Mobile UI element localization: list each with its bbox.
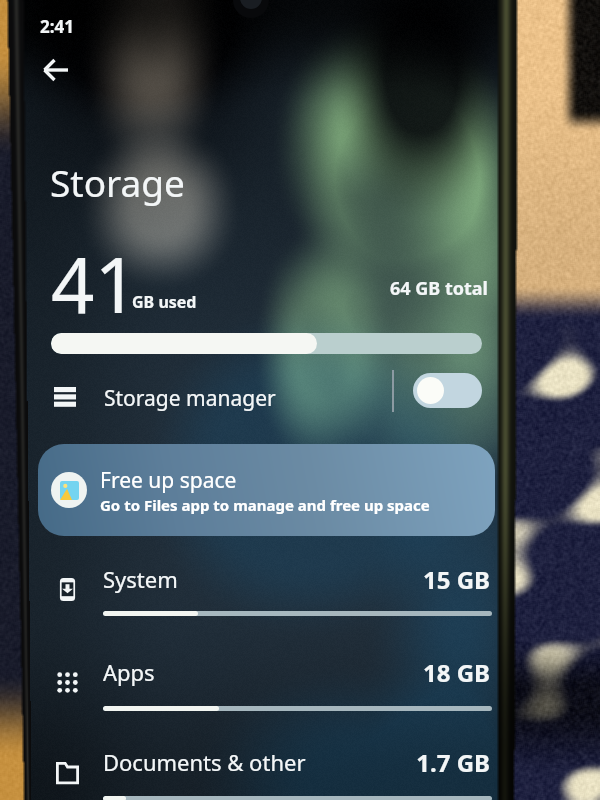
staticText: Storage manager xyxy=(104,384,276,413)
staticText: Documents & other xyxy=(103,747,306,777)
button[interactable]: Documents & other xyxy=(0,745,600,800)
staticText: System xyxy=(103,564,178,594)
staticText: 15 GB xyxy=(300,563,490,596)
staticText: Storage xyxy=(50,157,185,207)
staticText: GB used xyxy=(132,291,197,313)
staticText: 64 GB total xyxy=(390,276,488,301)
button[interactable]: Free up space xyxy=(38,444,495,536)
staticText: 18 GB xyxy=(300,656,490,689)
staticText: 41 xyxy=(51,232,138,336)
button[interactable]: System xyxy=(0,562,600,634)
staticText: Go to Files app to manage and free up sp… xyxy=(100,495,430,515)
button[interactable]: Storage manager xyxy=(0,372,600,424)
staticText: 2:41 xyxy=(40,15,74,38)
staticText: 1.7 GB xyxy=(300,746,490,779)
staticText: Free up space xyxy=(100,466,237,495)
staticText: Apps xyxy=(103,657,155,687)
button[interactable]: Back xyxy=(38,52,74,88)
button[interactable]: Storage manager toggle xyxy=(413,373,482,408)
button[interactable]: Apps xyxy=(0,655,600,727)
